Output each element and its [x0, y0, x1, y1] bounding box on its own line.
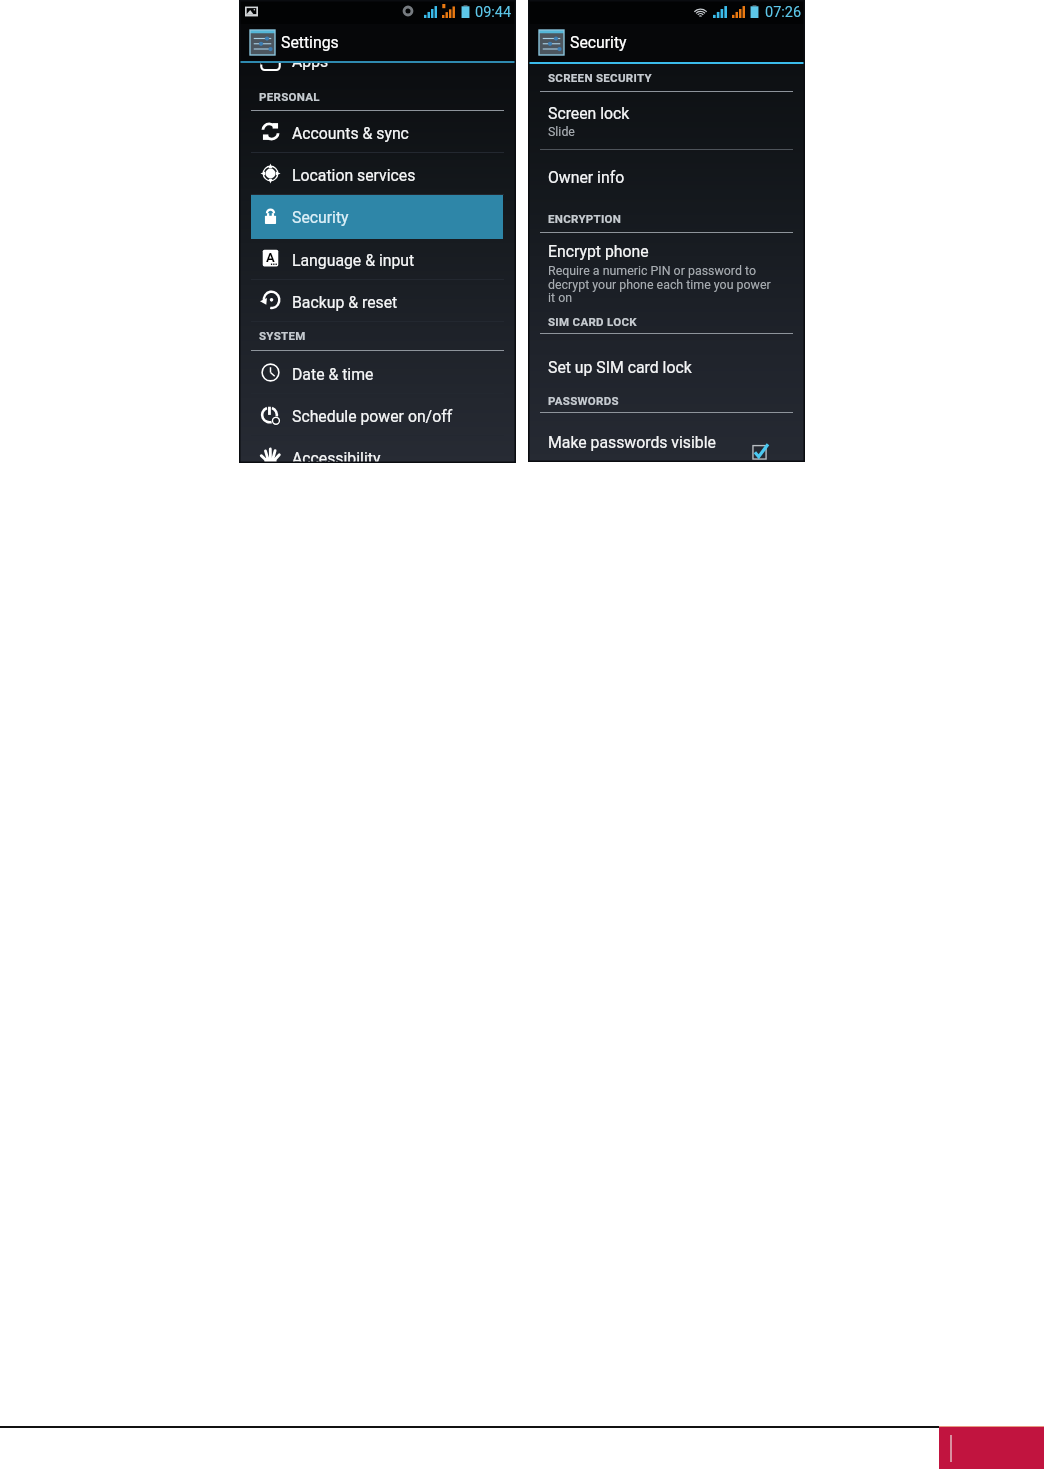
- button[interactable]: Set up SIM card lock: [528, 334, 805, 386]
- staticText: SIM CARD LOCK: [548, 315, 637, 328]
- staticText: Language & input: [292, 251, 415, 270]
- staticText: decrypt your phone each time you power: [548, 277, 771, 292]
- staticText: SCREEN SECURITY: [548, 71, 652, 84]
- other: Screenshot captured: [245, 5, 258, 18]
- button[interactable]: Backup & reset: [239, 279, 516, 321]
- staticText: Slide: [548, 124, 575, 139]
- staticText: it on: [548, 290, 573, 305]
- button[interactable]: Accounts & sync: [239, 110, 516, 152]
- button[interactable]: Settings: [239, 24, 516, 61]
- staticText: Apps: [292, 52, 329, 71]
- button[interactable]: A: [239, 237, 516, 279]
- staticText: ENCRYPTION: [548, 212, 622, 225]
- button[interactable]: Schedule power on/off: [239, 393, 516, 435]
- staticText: Schedule power on/off: [292, 407, 453, 426]
- staticText: Security: [570, 33, 627, 52]
- button[interactable]: Location services: [239, 152, 516, 194]
- staticText: 09:44: [475, 4, 512, 21]
- staticText: PASSWORDS: [548, 394, 619, 407]
- button[interactable]: Security: [251, 195, 503, 239]
- staticText: A: [266, 250, 275, 265]
- staticText: Location services: [292, 166, 416, 185]
- button[interactable]: Owner info: [528, 150, 805, 202]
- button[interactable]: Accessibility: [239, 435, 516, 463]
- button[interactable]: Screen lock: [528, 92, 805, 149]
- staticText: Date & time: [292, 365, 374, 384]
- staticText: SYSTEM: [259, 329, 306, 342]
- staticText: Accessibility: [292, 449, 381, 463]
- staticText: Encrypt phone: [548, 242, 649, 261]
- button[interactable]: Encrypt phone: [528, 233, 805, 305]
- staticText: Screen lock: [548, 104, 630, 123]
- staticText: PERSONAL: [259, 90, 320, 103]
- button[interactable]: Make passwords visible: [528, 424, 805, 462]
- staticText: Settings: [281, 33, 339, 52]
- staticText: Backup & reset: [292, 293, 398, 312]
- staticText: Security: [292, 208, 349, 227]
- button[interactable]: Date & time: [239, 351, 516, 393]
- staticText: Accounts & sync: [292, 124, 409, 143]
- staticText: 07:26: [765, 4, 802, 21]
- staticText: Require a numeric PIN or password to: [548, 263, 756, 278]
- button[interactable]: Security: [528, 24, 805, 62]
- staticText: Make passwords visible: [548, 433, 716, 452]
- other: Make passwords visible: [752, 444, 768, 460]
- button[interactable]: Apps: [239, 52, 516, 78]
- staticText: Set up SIM card lock: [548, 358, 692, 377]
- staticText: Owner info: [548, 168, 625, 187]
